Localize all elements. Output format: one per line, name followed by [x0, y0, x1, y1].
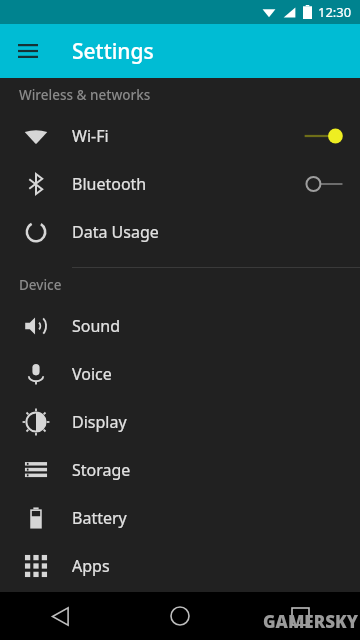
staticText: Bluetooth	[72, 173, 302, 195]
button[interactable]: Sound	[0, 302, 360, 350]
button[interactable]: Back	[0, 592, 120, 640]
button[interactable]: Bluetooth	[0, 160, 360, 208]
staticText: 12:30	[318, 3, 352, 21]
button[interactable]: Bluetooth switch	[302, 169, 346, 199]
staticText: Sound	[72, 315, 360, 337]
staticText: Voice	[72, 363, 360, 385]
button[interactable]: Voice	[0, 350, 360, 398]
staticText: Data Usage	[72, 221, 360, 243]
staticText: Settings	[72, 37, 154, 66]
staticText: Storage	[72, 459, 360, 481]
button[interactable]: Battery	[0, 494, 360, 542]
staticText: Wireless & networks	[19, 86, 151, 104]
staticText: Battery	[72, 507, 360, 529]
button[interactable]: Data Usage	[0, 208, 360, 256]
button[interactable]: Wi-Fi	[0, 112, 360, 160]
staticText: Display	[72, 411, 360, 433]
button[interactable]: Storage	[0, 446, 360, 494]
button[interactable]: Wi-Fi switch	[302, 121, 346, 151]
button[interactable]: Recent apps	[240, 592, 360, 640]
staticText: Wi-Fi	[72, 125, 302, 147]
staticText: GAMERSKY	[263, 610, 358, 633]
button[interactable]: Open navigation drawer	[12, 35, 44, 67]
staticText: Device	[19, 276, 62, 294]
button[interactable]: Home	[120, 592, 240, 640]
staticText: Apps	[72, 555, 360, 577]
button[interactable]: Apps	[0, 542, 360, 590]
button[interactable]: Display	[0, 398, 360, 446]
